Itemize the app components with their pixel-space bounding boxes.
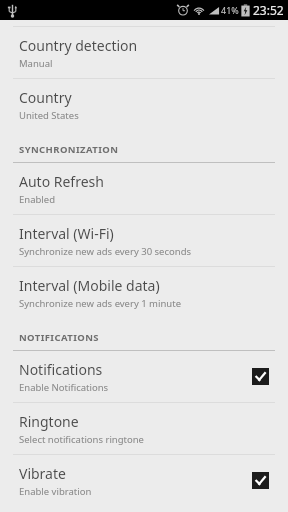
staticText: Synchronize new ads every 1 minute [19, 297, 181, 310]
staticText: Enable Notifications [19, 381, 109, 394]
staticText: 41% [221, 4, 239, 16]
staticText: Notifications [19, 360, 103, 379]
staticText: Ringtone [19, 412, 79, 431]
button[interactable]: Interval (Mobile data) [0, 267, 288, 318]
button[interactable]: Notifications [0, 351, 288, 402]
staticText: Enabled [19, 193, 55, 206]
staticText: Synchronize new ads every 30 seconds [19, 245, 192, 258]
button[interactable]: Interval (Wi-Fi) [0, 215, 288, 266]
staticText: Select notifications ringtone [19, 433, 144, 446]
staticText: Manual [19, 57, 53, 70]
button[interactable]: Ringtone [0, 403, 288, 454]
staticText: NOTIFICATIONS [19, 331, 99, 344]
button[interactable]: Country [0, 79, 288, 130]
staticText: SYNCHRONIZATION [19, 143, 119, 156]
staticText: Country detection [19, 36, 138, 55]
button[interactable]: Country detection [0, 27, 288, 78]
staticText: Country [19, 88, 72, 107]
staticText: United States [19, 109, 79, 122]
button[interactable]: Auto Refresh [0, 163, 288, 214]
staticText: Interval (Mobile data) [19, 276, 160, 295]
staticText: Auto Refresh [19, 172, 104, 191]
staticText: 23:52 [253, 2, 284, 18]
staticText: Vibrate [19, 464, 66, 483]
button[interactable]: Vibrate [0, 455, 288, 506]
button[interactable]: Toggle Notifications [252, 368, 269, 385]
button[interactable]: Toggle Vibrate [252, 472, 269, 489]
staticText: Interval (Wi-Fi) [19, 224, 114, 243]
staticText: Enable vibration [19, 485, 92, 498]
